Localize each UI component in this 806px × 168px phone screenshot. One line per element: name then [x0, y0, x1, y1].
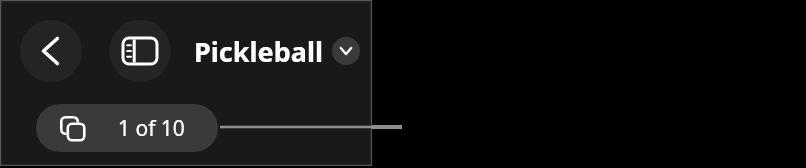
button[interactable]: 1 of 10	[36, 104, 218, 152]
button[interactable]: Back	[20, 20, 82, 82]
staticText: Pickleball	[194, 33, 324, 70]
button[interactable]: More options	[332, 37, 360, 65]
staticText: 1 of 10	[118, 114, 185, 143]
button[interactable]: Pickleball	[194, 31, 326, 71]
button[interactable]: Show sidebar	[109, 20, 171, 82]
